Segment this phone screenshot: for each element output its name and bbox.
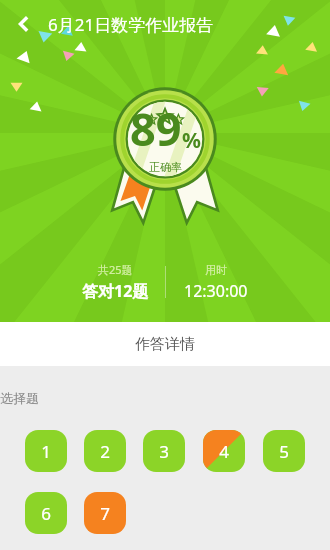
staticText: 用时 xyxy=(205,263,227,277)
staticText: 选择题 xyxy=(0,390,330,406)
staticText: 6 xyxy=(41,502,51,525)
staticText: 答对12题 xyxy=(82,280,149,302)
staticText: 7 xyxy=(100,502,110,525)
button[interactable]: 5 xyxy=(263,430,305,472)
button[interactable]: 7 xyxy=(84,492,126,534)
staticText: 正确率 xyxy=(149,160,182,174)
staticText: 89 xyxy=(130,98,182,159)
staticText: 作答详情 xyxy=(135,335,195,354)
button[interactable]: 2 xyxy=(84,430,126,472)
staticText: 6月21日数学作业报告 xyxy=(48,13,282,36)
staticText: 5 xyxy=(279,440,289,463)
staticText: % xyxy=(182,126,201,155)
staticText: 12:30:00 xyxy=(184,280,248,302)
staticText: 3 xyxy=(159,440,169,463)
staticText: 共25题 xyxy=(98,262,133,277)
staticText: 1 xyxy=(41,440,51,463)
staticText: 2 xyxy=(100,440,110,463)
button[interactable]: Back xyxy=(0,0,48,48)
button[interactable]: 6 xyxy=(25,492,67,534)
button[interactable]: 3 xyxy=(143,430,185,472)
button[interactable]: 4 xyxy=(203,430,245,472)
button[interactable]: 1 xyxy=(25,430,67,472)
staticText: 4 xyxy=(219,440,229,463)
